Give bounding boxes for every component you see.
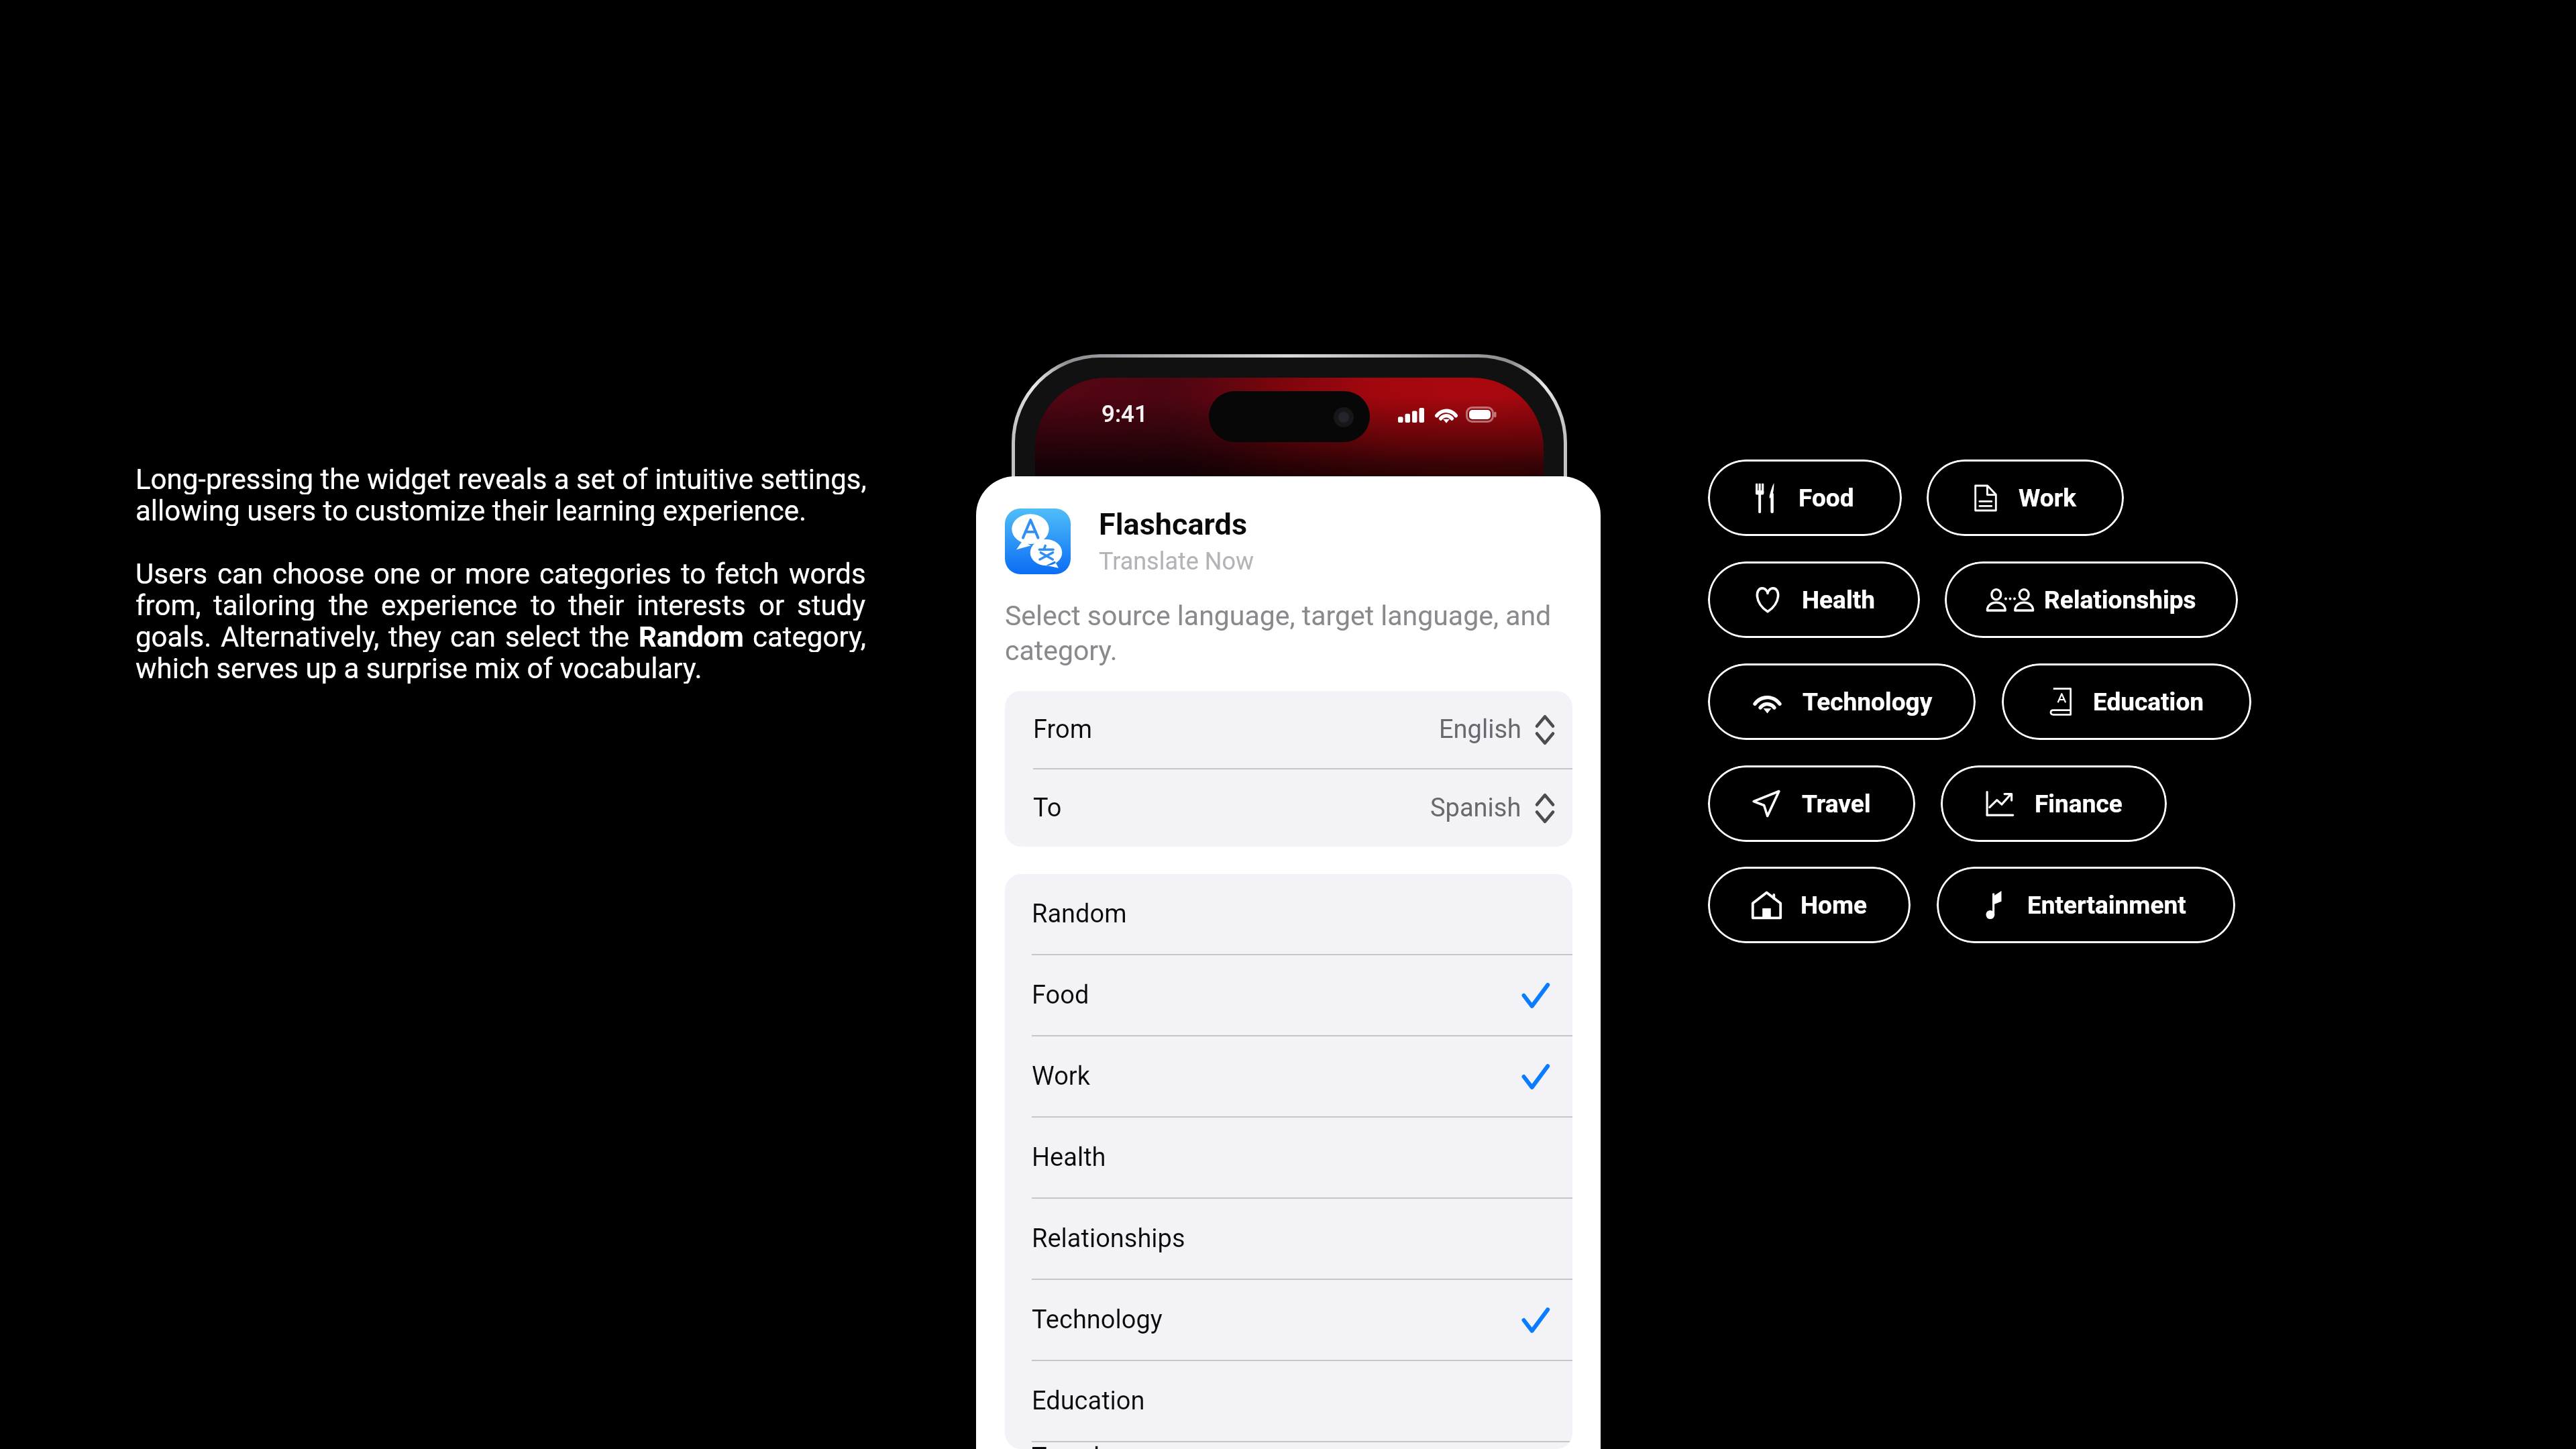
button[interactable]: Education [1005, 1361, 1572, 1441]
staticText: the [590, 621, 630, 652]
staticText: Travel [1032, 1442, 1100, 1449]
button[interactable]: Food [1708, 460, 1902, 536]
staticText: Entertainment [2027, 891, 2186, 920]
button[interactable]: Travel [1005, 1442, 1572, 1449]
button[interactable]: Relationships [1945, 561, 2238, 638]
staticText: Work [2019, 484, 2077, 513]
staticText: categories [539, 557, 672, 589]
staticText: can [217, 557, 264, 589]
staticText: choose [272, 557, 364, 589]
staticText: to [681, 557, 706, 589]
staticText: Random [1032, 899, 1127, 929]
staticText: Work [1032, 1061, 1090, 1091]
staticText: interests [637, 589, 746, 621]
staticText: select [505, 621, 581, 652]
staticText: Translate Now [1099, 547, 1254, 576]
staticText: more [465, 557, 530, 589]
staticText: Flashcards [1099, 506, 1248, 542]
staticText: Finance [2035, 790, 2123, 818]
staticText: 9:41 [1102, 400, 1148, 428]
staticText: they [388, 621, 441, 652]
staticText: goals. [136, 621, 212, 652]
staticText: Spanish [1430, 793, 1521, 823]
button[interactable]: Travel [1708, 765, 1915, 842]
staticText: can [450, 621, 496, 652]
staticText: Select source language, target language,… [1005, 600, 1562, 667]
staticText: Technology [1803, 688, 1933, 716]
button[interactable]: Work [1005, 1036, 1572, 1116]
button[interactable]: To [1005, 769, 1572, 847]
staticText: or [430, 557, 456, 589]
staticText: Long-pressing the widget reveals a set o… [136, 463, 867, 494]
staticText: From [1033, 714, 1093, 745]
button[interactable]: Entertainment [1937, 867, 2235, 943]
staticText: tailoring [213, 589, 316, 621]
button[interactable]: Technology [1708, 663, 1976, 740]
button[interactable]: Work [1927, 460, 2124, 536]
staticText: Relationships [1032, 1224, 1185, 1254]
staticText: Relationships [2044, 586, 2196, 614]
staticText: or [759, 589, 785, 621]
staticText: one [374, 557, 421, 589]
staticText: English [1439, 714, 1521, 745]
staticText: Food [1032, 980, 1089, 1010]
staticText: allowing users to customize their learni… [136, 494, 807, 526]
staticText: Users [136, 557, 208, 589]
staticText: Education [2093, 688, 2204, 716]
staticText: Education [1032, 1386, 1145, 1416]
button[interactable]: Finance [1941, 765, 2167, 842]
button[interactable]: Random [1005, 874, 1572, 954]
staticText: fetch [715, 557, 780, 589]
staticText: To [1033, 793, 1062, 823]
staticText: Home [1801, 891, 1868, 920]
staticText: words [789, 557, 866, 589]
staticText: category, [753, 621, 866, 652]
staticText: from, [136, 589, 201, 621]
button[interactable]: Food [1005, 955, 1572, 1035]
staticText: Food [1799, 484, 1854, 513]
staticText: Health [1802, 586, 1875, 614]
staticText: which serves up a surprise mix of vocabu… [136, 652, 702, 684]
button[interactable]: Health [1708, 561, 1920, 638]
staticText: Health [1032, 1142, 1106, 1173]
button[interactable]: Relationships [1005, 1199, 1572, 1279]
staticText: Technology [1032, 1305, 1163, 1335]
staticText: Travel [1802, 790, 1871, 818]
button[interactable]: From [1005, 691, 1572, 768]
staticText: the [329, 589, 369, 621]
staticText: to [531, 589, 556, 621]
button[interactable]: Education [2002, 663, 2251, 740]
staticText: experience [381, 589, 518, 621]
staticText: their [568, 589, 625, 621]
staticText: study [797, 589, 866, 621]
staticText: Alternatively, [221, 621, 380, 652]
button[interactable]: Health [1005, 1118, 1572, 1197]
staticText: Random [639, 621, 744, 652]
button[interactable]: Technology [1005, 1280, 1572, 1360]
button[interactable]: Home [1708, 867, 1911, 943]
